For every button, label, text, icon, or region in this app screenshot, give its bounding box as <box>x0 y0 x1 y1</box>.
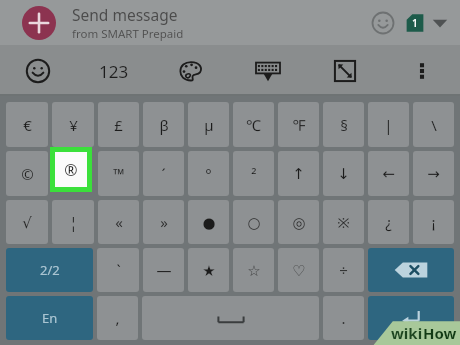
button[interactable]: © <box>6 151 48 196</box>
button[interactable]: ` <box>97 248 139 292</box>
staticText: 1 <box>412 16 419 30</box>
staticText: 123 <box>99 60 129 83</box>
button[interactable]: « <box>98 200 139 244</box>
button[interactable]: ↑ <box>278 151 319 196</box>
button[interactable]: ¿ <box>368 200 409 244</box>
staticText: ℃ <box>246 115 261 135</box>
staticText: ◎ <box>292 214 306 231</box>
button[interactable]: → <box>413 151 454 196</box>
button[interactable]: ™ <box>98 151 139 196</box>
button[interactable]: . <box>323 296 364 340</box>
staticText: ← <box>382 165 395 182</box>
button[interactable]: ¥ <box>52 102 94 147</box>
button[interactable]: | <box>368 102 409 147</box>
button[interactable]: ↓ <box>323 151 364 196</box>
button[interactable]: ☆ <box>233 248 274 292</box>
button[interactable]: √ <box>6 200 48 244</box>
button[interactable]: Change SIM <box>428 11 452 35</box>
button[interactable]: En <box>6 296 93 340</box>
staticText: ` <box>116 260 121 280</box>
staticText: © <box>21 164 34 184</box>
staticText: ÷ <box>339 260 348 280</box>
staticText: En <box>42 309 58 327</box>
button[interactable]: » <box>143 200 184 244</box>
button[interactable]: ● <box>188 200 229 244</box>
button[interactable]: ¡ <box>413 200 454 244</box>
staticText: £ <box>114 115 123 135</box>
button[interactable]: ℃ <box>233 102 274 147</box>
staticText: ² <box>251 164 257 184</box>
staticText: ☆ <box>247 262 261 279</box>
staticText: from SMART Prepaid <box>72 26 184 42</box>
staticText: ℉ <box>292 115 306 135</box>
button[interactable]: ° <box>188 151 229 196</box>
button[interactable]: ★ <box>188 248 229 292</box>
button[interactable]: ◎ <box>278 200 319 244</box>
staticText: ※ <box>337 212 350 232</box>
staticText: β <box>159 115 169 135</box>
button[interactable]: Backspace <box>368 248 454 292</box>
staticText: √ <box>22 214 32 231</box>
staticText: ★ <box>202 262 216 279</box>
button[interactable]: ² <box>233 151 274 196</box>
staticText: ↓ <box>337 165 350 182</box>
button[interactable]: Resize keyboard <box>306 46 383 96</box>
button[interactable]: £ <box>98 102 139 147</box>
button[interactable]: Numbers <box>76 46 152 96</box>
button[interactable]: ♡ <box>278 248 319 292</box>
button[interactable]: ÷ <box>323 248 364 292</box>
button[interactable]: Insert emoji <box>368 8 398 38</box>
button[interactable]: SIM 1 <box>404 10 426 36</box>
button[interactable]: \ <box>413 102 454 147</box>
button[interactable]: Emoji keyboard <box>0 46 76 96</box>
button[interactable]: ○ <box>233 200 274 244</box>
staticText: » <box>160 212 168 232</box>
staticText: → <box>427 165 440 182</box>
staticText: . <box>341 308 346 328</box>
staticText: , <box>115 308 120 328</box>
button[interactable]: ← <box>368 151 409 196</box>
staticText: ¿ <box>385 212 392 232</box>
staticText: ○ <box>247 214 261 231</box>
button[interactable]: Space <box>142 296 319 340</box>
staticText: § <box>340 115 348 135</box>
button[interactable]: Enter <box>368 296 454 340</box>
button[interactable]: ※ <box>323 200 364 244</box>
staticText: ° <box>205 164 212 184</box>
button[interactable]: € <box>6 102 48 147</box>
staticText: µ <box>204 115 214 135</box>
staticText: 2/2 <box>40 261 60 279</box>
staticText: How <box>423 323 457 343</box>
button[interactable]: ´ <box>143 151 184 196</box>
button[interactable]: ℉ <box>278 102 319 147</box>
staticText: € <box>23 115 32 135</box>
staticText: Send message <box>72 4 178 25</box>
button[interactable]: More options <box>383 46 460 96</box>
staticText: wiki <box>391 323 423 343</box>
staticText: ↑ <box>292 165 305 182</box>
staticText: ™ <box>113 164 125 184</box>
staticText: « <box>115 212 123 232</box>
button[interactable]: ® <box>55 152 87 187</box>
button[interactable]: Add attachment <box>22 6 56 40</box>
staticText: ¦ <box>69 212 78 232</box>
staticText: ® <box>64 159 78 181</box>
button[interactable]: § <box>323 102 364 147</box>
staticText: | <box>384 115 393 135</box>
staticText: — <box>156 260 172 280</box>
button[interactable]: µ <box>188 102 229 147</box>
button[interactable]: — <box>143 248 184 292</box>
staticText: ● <box>202 214 216 231</box>
button[interactable]: , <box>97 296 138 340</box>
button[interactable]: ¦ <box>52 200 94 244</box>
button[interactable]: Theme <box>152 46 229 96</box>
staticText: ¥ <box>69 115 78 135</box>
staticText: ¡ <box>431 212 436 232</box>
button[interactable]: 2/2 <box>6 248 93 292</box>
button[interactable]: β <box>143 102 184 147</box>
button[interactable]: Hide keyboard <box>229 46 306 96</box>
staticText: ´ <box>161 164 166 184</box>
staticText: ♡ <box>292 262 306 279</box>
staticText: \ <box>431 115 437 135</box>
